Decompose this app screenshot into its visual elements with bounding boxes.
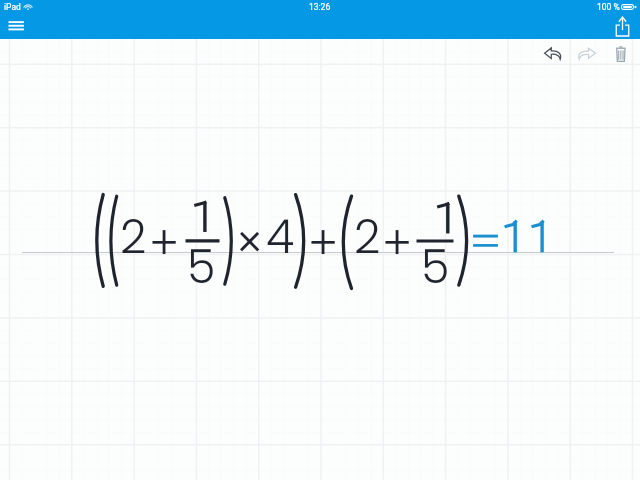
staticText: 13:26 — [309, 2, 331, 12]
button[interactable]: Redo — [569, 41, 602, 67]
staticText: 5 — [421, 235, 450, 299]
button[interactable]: Share — [609, 13, 636, 39]
button[interactable]: Delete — [606, 40, 636, 66]
staticText: 4 — [266, 205, 295, 269]
staticText: + — [382, 211, 413, 275]
staticText: + — [308, 211, 339, 275]
staticText: + — [149, 211, 180, 275]
staticText: iPad — [4, 2, 21, 12]
staticText: 2 — [354, 205, 381, 269]
staticText: 100 % — [597, 2, 620, 12]
button[interactable]: Menu — [2, 16, 30, 44]
staticText: 2 — [120, 205, 147, 269]
staticText: 5 — [187, 235, 216, 299]
button[interactable]: Undo — [536, 41, 569, 67]
staticText: × — [236, 211, 264, 275]
